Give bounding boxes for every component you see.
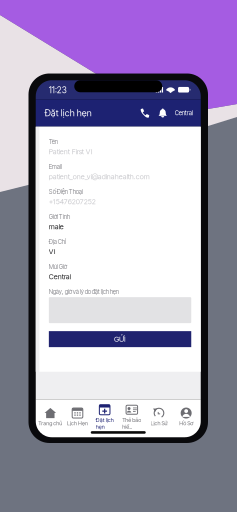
- button[interactable]: Lịch Hẹn: [64, 408, 91, 427]
- button[interactable]: Thẻ bảo hiể...: [118, 404, 145, 430]
- staticText: Số Điện Thoại: [49, 188, 83, 196]
- staticText: patient_one_vi@adinahealth.com: [49, 172, 150, 181]
- staticText: Central: [175, 109, 193, 117]
- button[interactable]: Call: [135, 102, 154, 123]
- staticText: male: [49, 222, 64, 231]
- button[interactable]: Đặt lịch hẹn: [91, 404, 118, 430]
- staticText: Lịch Hẹn: [67, 420, 88, 427]
- staticText: Múi Giờ: [49, 263, 67, 270]
- staticText: Email: [49, 163, 62, 171]
- staticText: GỬI: [114, 335, 126, 344]
- staticText: Lịch Sử: [150, 420, 167, 427]
- button[interactable]: GỬI: [49, 331, 191, 347]
- button[interactable]: Hồ Sơ: [173, 408, 200, 427]
- staticText: Địa Chỉ: [49, 238, 66, 246]
- staticText: Ngày, giờ và lý do đặt lịch hẹn: [49, 288, 119, 295]
- staticText: 11:23: [49, 85, 67, 95]
- button[interactable]: Lịch Sử: [145, 408, 173, 427]
- staticText: Tên: [49, 138, 58, 146]
- staticText: Trang chủ: [38, 420, 62, 427]
- staticText: +15476207252: [49, 197, 96, 206]
- staticText: Đặt lịch hẹn: [96, 417, 114, 430]
- button[interactable]: Central: [172, 103, 196, 123]
- staticText: Đặt lịch hẹn: [45, 107, 92, 118]
- staticText: Hồ Sơ: [179, 420, 193, 427]
- staticText: Thẻ bảo hiể...: [122, 417, 141, 430]
- staticText: VI: [49, 247, 56, 256]
- staticText: Giới Tính: [49, 213, 70, 221]
- staticText: Central: [49, 272, 71, 281]
- button[interactable]: Trang chủ: [37, 408, 64, 427]
- button[interactable]: Notifications: [154, 102, 172, 123]
- staticText: Patient First VI: [49, 147, 93, 156]
